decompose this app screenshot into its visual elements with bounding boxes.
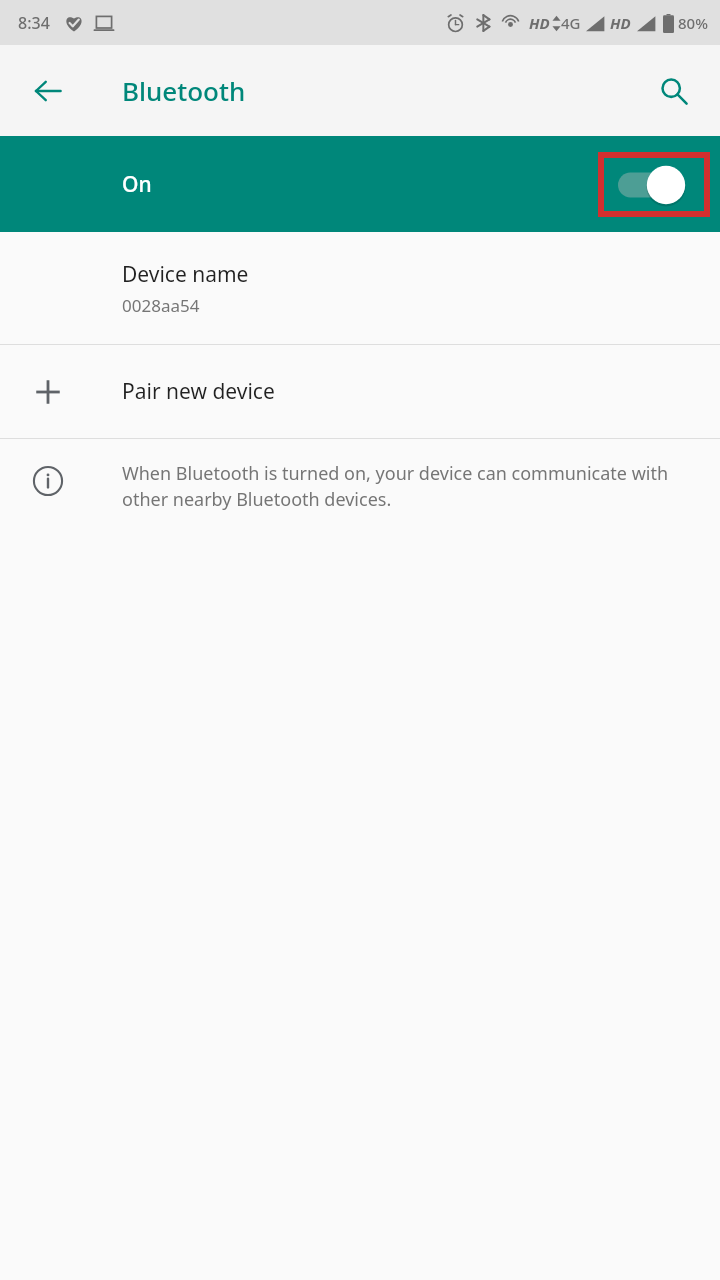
staticText: 0028aa54 [122,294,200,317]
button[interactable]: On [0,136,720,232]
staticText: 80% [678,13,708,33]
staticText: On [122,170,152,199]
staticText: Pair new device [122,377,275,406]
staticText: 4G [561,13,581,33]
button[interactable]: Back [24,67,72,115]
staticText: Bluetooth [122,73,246,108]
staticText: HD [610,13,631,33]
staticText: Device name [122,260,249,289]
staticText: 8:34 [18,12,50,34]
button[interactable]: Bluetooth toggle, on [618,165,690,205]
button[interactable]: Search [650,67,698,115]
staticText: HD [529,13,550,33]
button[interactable]: Pair new device [0,345,720,438]
button[interactable]: Device name [0,232,720,344]
staticText: When Bluetooth is turned on, your device… [122,461,694,512]
